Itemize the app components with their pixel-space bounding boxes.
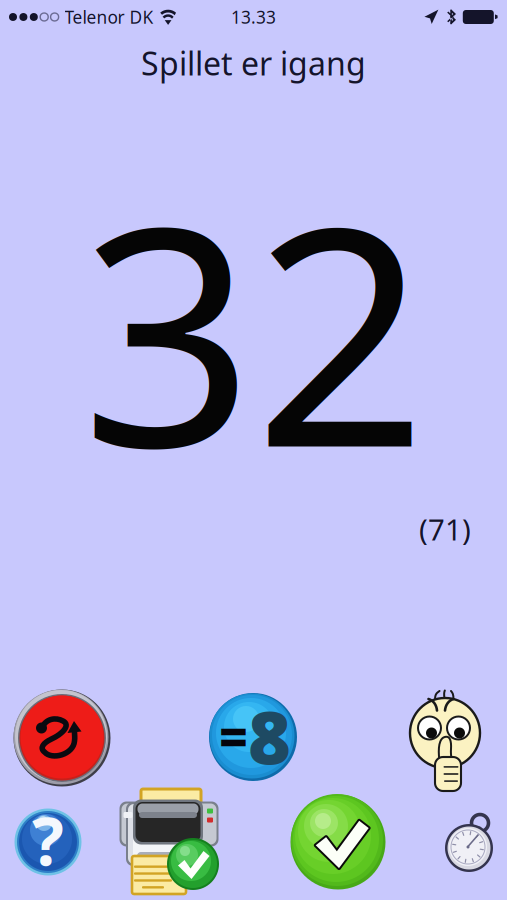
- button[interactable]: Timer: [438, 814, 500, 878]
- button[interactable]: Print: [118, 790, 220, 890]
- button[interactable]: Quiet: [405, 678, 485, 776]
- staticText: (71): [419, 509, 471, 548]
- button[interactable]: Equals eight: [209, 693, 297, 781]
- button[interactable]: Undo: [11, 687, 112, 788]
- staticText: ?: [32, 796, 64, 884]
- staticText: Spillet er igang: [141, 42, 366, 84]
- button[interactable]: Help: [14, 808, 81, 875]
- staticText: =: [219, 703, 248, 769]
- button[interactable]: Confirm: [290, 794, 385, 889]
- staticText: 8: [248, 687, 291, 785]
- staticText: Telenor DK: [65, 5, 154, 28]
- staticText: 32: [81, 128, 427, 530]
- staticText: 13.33: [231, 5, 276, 28]
